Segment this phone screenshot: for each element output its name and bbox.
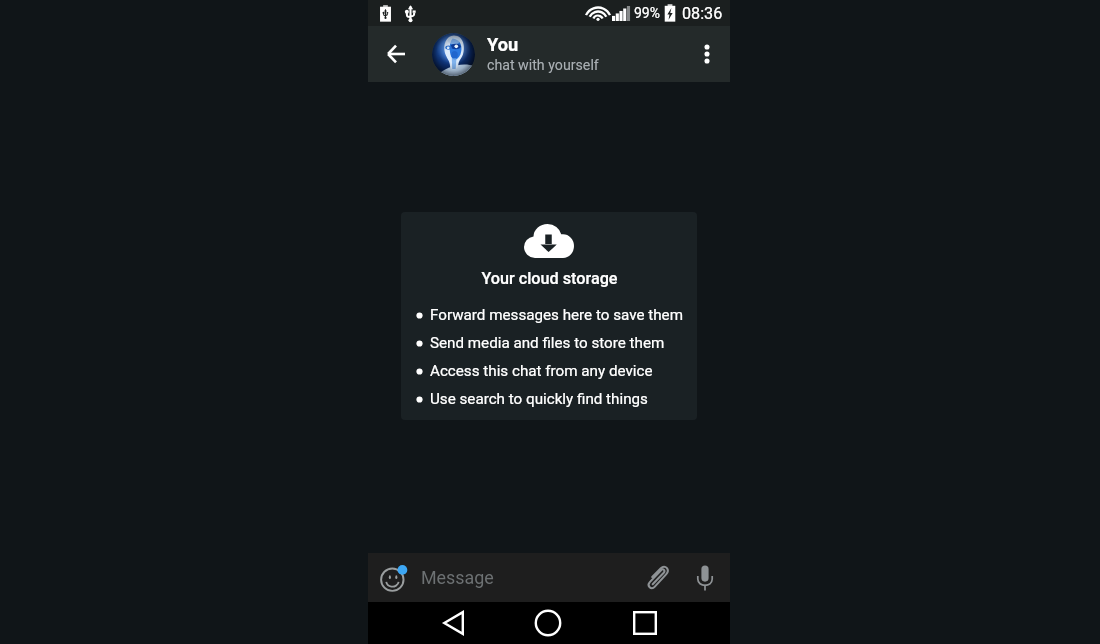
- staticText: Forward messages here to save them: [430, 306, 683, 324]
- button[interactable]: Record voice message: [680, 553, 730, 602]
- button[interactable]: You: [423, 26, 684, 82]
- button[interactable]: Emoji: [368, 553, 420, 602]
- button[interactable]: Attach: [634, 553, 680, 602]
- staticText: 99%: [634, 5, 660, 21]
- button[interactable]: Back: [368, 26, 423, 82]
- staticText: Send media and files to store them: [430, 334, 665, 352]
- staticText: Your cloud storage: [481, 269, 618, 288]
- button[interactable]: More options: [684, 26, 730, 82]
- staticText: You: [487, 34, 519, 55]
- staticText: Message: [421, 567, 634, 588]
- staticText: Access this chat from any device: [430, 362, 653, 380]
- button[interactable]: Recent apps: [623, 602, 667, 644]
- staticText: 08:36: [682, 4, 723, 23]
- staticText: chat with yourself: [487, 57, 599, 74]
- button[interactable]: Back: [431, 602, 475, 644]
- button[interactable]: Home: [526, 602, 570, 644]
- staticText: Use search to quickly find things: [430, 390, 648, 408]
